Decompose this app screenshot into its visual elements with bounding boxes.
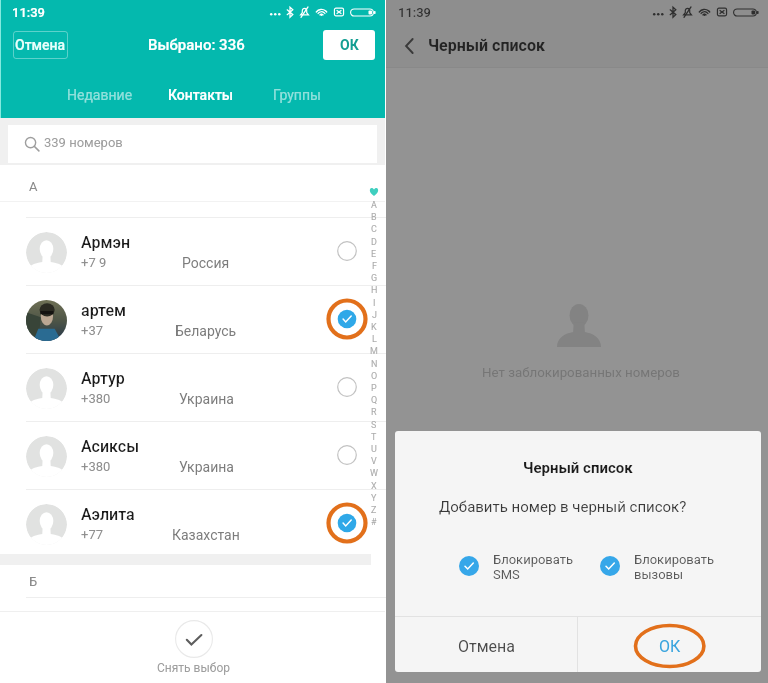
staticText: M — [370, 346, 378, 357]
staticText: Аэлита — [81, 505, 135, 524]
staticText: +7 9 — [81, 255, 107, 270]
staticText: # — [371, 517, 377, 528]
button[interactable]: Назад — [389, 26, 429, 66]
staticText: Черный список — [523, 459, 633, 477]
staticText: L — [372, 334, 377, 345]
staticText: Армэн — [81, 233, 131, 252]
staticText: F — [372, 261, 377, 272]
staticText: U — [371, 444, 377, 455]
staticText: Отмена — [458, 637, 515, 656]
button[interactable]: Армэн — [0, 217, 385, 285]
button[interactable]: Выбрать Асиксы — [325, 421, 369, 489]
button[interactable]: Снять выбор — [148, 616, 238, 680]
staticText: Недавние — [67, 87, 133, 103]
button[interactable]: Алфавитный указатель — [364, 183, 384, 531]
staticText: Отмена — [15, 37, 66, 53]
staticText: X — [371, 481, 377, 492]
button[interactable]: Переключатель — [600, 556, 620, 576]
staticText: Украина — [179, 391, 234, 407]
staticText: 11:39 — [12, 5, 45, 20]
button[interactable]: Переключатель — [459, 556, 479, 576]
staticText: Артур — [81, 369, 125, 388]
staticText: Черный список — [428, 36, 545, 55]
button[interactable]: Отмена — [395, 619, 577, 672]
staticText: J — [372, 310, 377, 321]
button[interactable]: Убрать выбор артем — [325, 285, 369, 353]
button[interactable]: Недавние — [59, 82, 140, 108]
staticText: T — [371, 432, 377, 443]
staticText: Нет заблокированных номеров — [482, 365, 680, 381]
staticText: Снять выбор — [157, 661, 230, 675]
button[interactable]: артем — [0, 285, 385, 353]
staticText: Контакты — [168, 87, 234, 103]
staticText: C — [371, 224, 377, 235]
staticText: Выбрано: 336 — [148, 36, 245, 54]
staticText: Асиксы — [81, 437, 140, 456]
staticText: D — [371, 237, 377, 248]
button[interactable]: Группы — [262, 82, 332, 108]
staticText: W — [370, 468, 378, 479]
staticText: ОК — [340, 37, 359, 53]
staticText: H — [371, 285, 378, 296]
staticText: Блокировать вызовы — [634, 552, 715, 582]
staticText: G — [371, 273, 378, 284]
staticText: Добавить номер в черный список? — [439, 498, 687, 516]
staticText: Украина — [179, 459, 234, 475]
staticText: Y — [371, 493, 377, 504]
button[interactable]: Выбрать Армэн — [325, 217, 369, 285]
staticText: 339 номеров — [44, 135, 123, 150]
staticText: R — [371, 407, 377, 418]
staticText: P — [371, 383, 377, 394]
button[interactable]: ОК — [323, 30, 375, 60]
staticText: N — [371, 359, 378, 370]
staticText: +380 — [81, 459, 111, 474]
staticText: B — [371, 212, 377, 223]
staticText: A — [371, 200, 377, 211]
staticText: K — [371, 322, 377, 333]
staticText: S — [371, 420, 377, 431]
staticText: Z — [371, 505, 377, 516]
staticText: O — [371, 371, 378, 382]
staticText: ОК — [659, 637, 681, 656]
staticText: +77 — [81, 527, 103, 542]
staticText: Блокировать SMS — [493, 552, 574, 582]
staticText: +37 — [81, 323, 103, 338]
button[interactable]: Асиксы — [0, 421, 385, 489]
staticText: артем — [81, 301, 127, 320]
staticText: Группы — [273, 87, 321, 103]
button[interactable]: ОК — [578, 619, 761, 672]
staticText: +380 — [81, 391, 111, 406]
staticText: I — [373, 298, 376, 309]
button[interactable]: Убрать выбор Аэлита — [325, 489, 369, 557]
staticText: V — [371, 456, 377, 467]
staticText: Беларусь — [175, 323, 237, 339]
button[interactable]: Контакты — [161, 82, 241, 108]
button[interactable]: 339 номеров — [8, 125, 377, 163]
button[interactable]: Выбрать Артур — [325, 353, 369, 421]
staticText: 11:39 — [398, 5, 431, 20]
staticText: Казахстан — [172, 527, 240, 543]
staticText: Б — [29, 574, 38, 589]
staticText: Россия — [182, 255, 230, 271]
staticText: Q — [371, 395, 378, 406]
button[interactable]: Аэлита — [0, 489, 385, 557]
button[interactable]: Отмена — [13, 31, 68, 59]
staticText: А — [29, 179, 38, 194]
staticText: E — [371, 249, 377, 260]
button[interactable]: Артур — [0, 353, 385, 421]
